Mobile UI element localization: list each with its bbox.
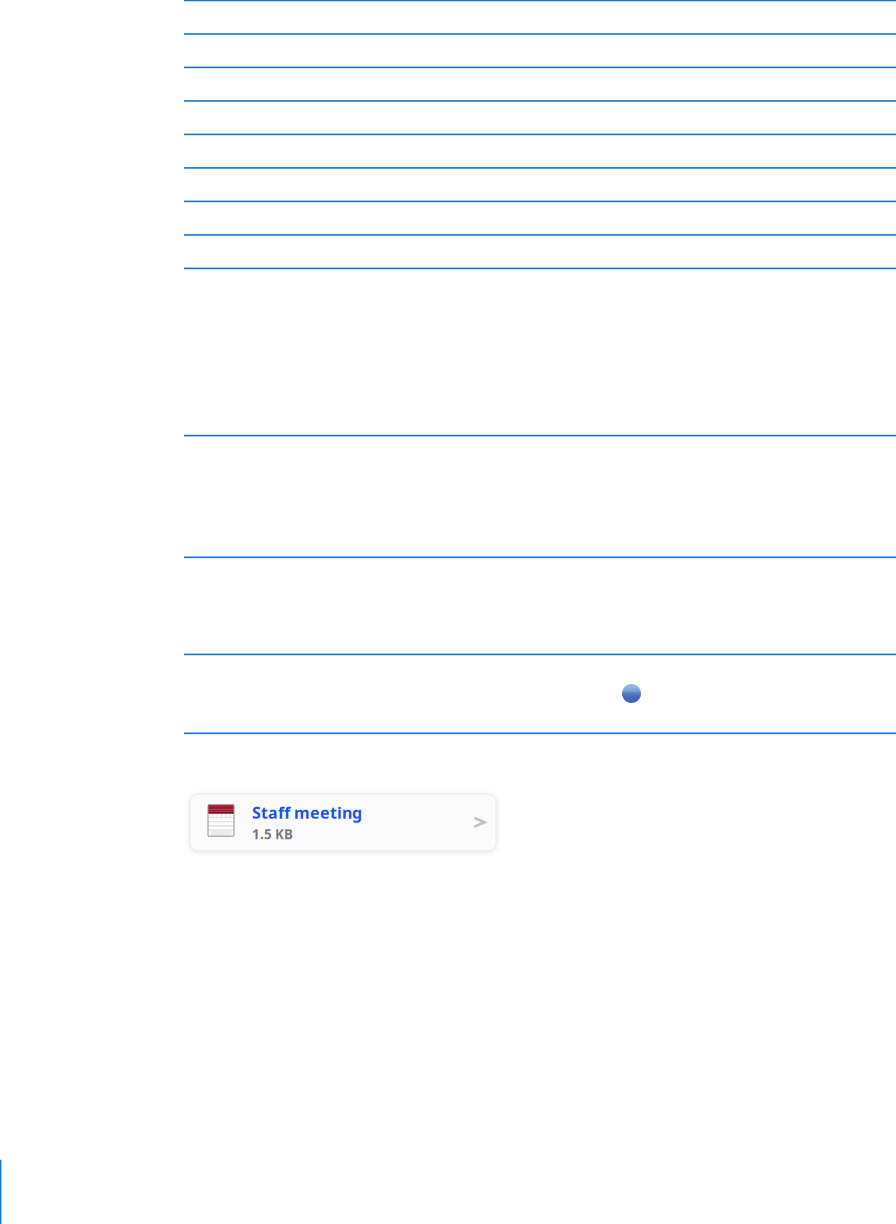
staticText: Staff meeting [252, 802, 362, 823]
button[interactable]: Staff meeting [190, 794, 496, 851]
staticText: 1.5 KB [252, 825, 293, 843]
